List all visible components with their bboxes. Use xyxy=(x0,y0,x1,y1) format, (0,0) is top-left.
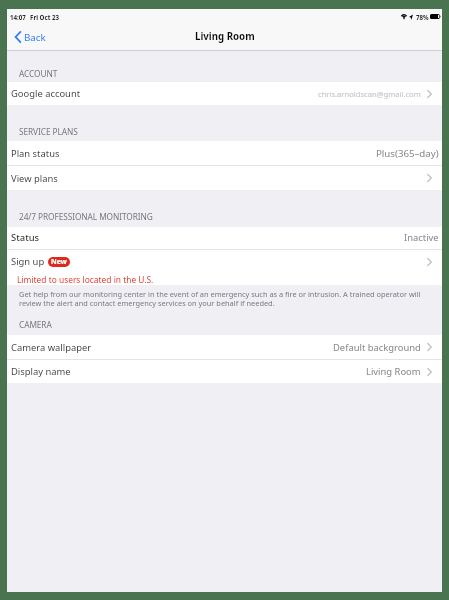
button[interactable]: Sign up xyxy=(7,250,442,285)
staticText: 24/7 PROFESSIONAL MONITORING xyxy=(19,211,153,222)
button[interactable]: Status xyxy=(7,227,442,250)
staticText: 78% xyxy=(416,13,429,21)
staticText: 14:07 xyxy=(10,13,26,21)
staticText: Plan status xyxy=(11,147,60,160)
staticText: SERVICE PLANS xyxy=(19,126,78,137)
button[interactable]: Camera wallpaper xyxy=(7,335,442,360)
staticText: Default background xyxy=(333,341,421,354)
staticText: chris.arnoldscan@gmail.com xyxy=(318,89,421,99)
staticText: Status xyxy=(11,231,40,244)
staticText: Sign up xyxy=(11,255,45,268)
staticText: Google account xyxy=(11,87,81,100)
staticText: Limited to users located in the U.S. xyxy=(17,274,154,285)
staticText: Inactive xyxy=(404,231,439,244)
staticText: Plus(365–day) xyxy=(376,147,439,160)
staticText: Living Room xyxy=(366,365,421,378)
staticText: Living Room xyxy=(195,30,255,43)
button[interactable]: Plan status xyxy=(7,141,442,166)
staticText: New xyxy=(51,257,67,267)
staticText: Get help from our monitoring center in t… xyxy=(19,289,432,308)
staticText: View plans xyxy=(11,172,58,185)
staticText: Fri Oct 23 xyxy=(30,13,60,21)
button[interactable]: Google account xyxy=(7,82,442,105)
button[interactable]: Back xyxy=(7,27,52,47)
button[interactable]: Display name xyxy=(7,360,442,383)
staticText: Back xyxy=(24,31,46,44)
staticText: ACCOUNT xyxy=(19,68,58,79)
staticText: CAMERA xyxy=(19,319,52,330)
staticText: Display name xyxy=(11,365,71,378)
button[interactable]: View plans xyxy=(7,166,442,190)
staticText: Camera wallpaper xyxy=(11,341,92,354)
